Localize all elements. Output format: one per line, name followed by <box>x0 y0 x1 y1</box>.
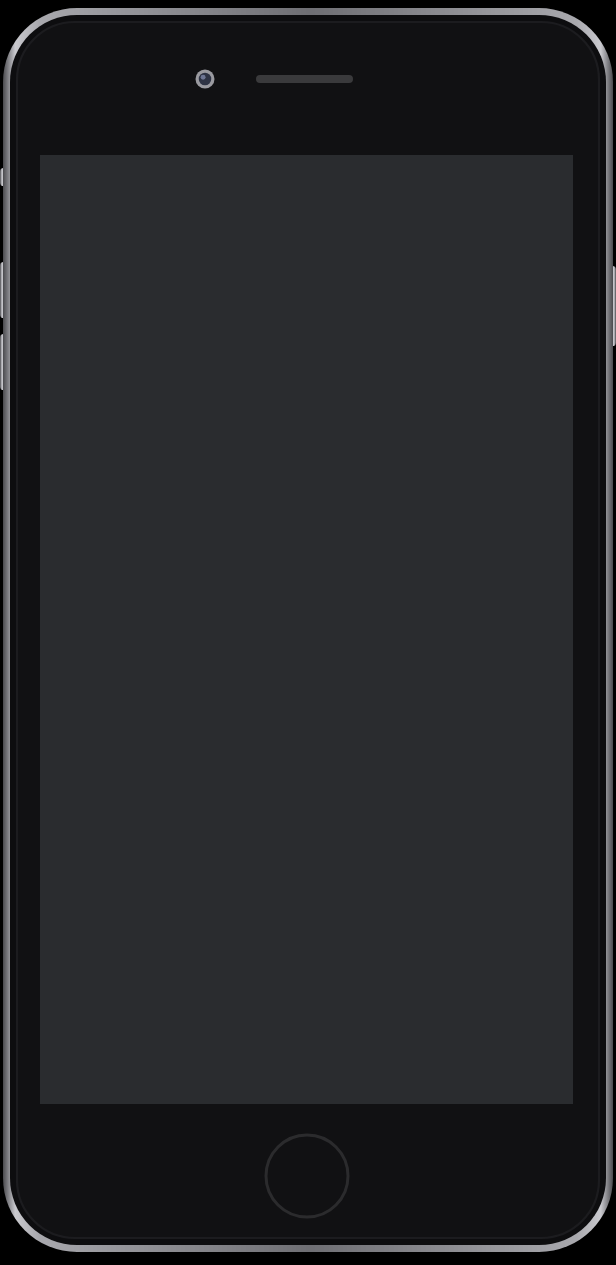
button[interactable]: Phone device preview <box>0 0 616 1265</box>
